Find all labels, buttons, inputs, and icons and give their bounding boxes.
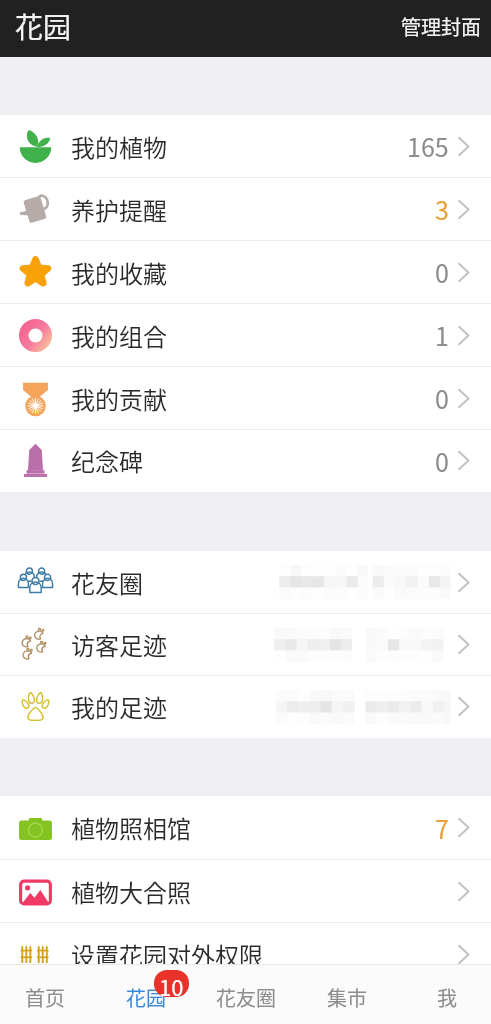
staticText: 养护提醒 [71,192,435,227]
button[interactable]: 我的收藏 [0,241,491,304]
staticText: 管理封面 [401,12,481,41]
button[interactable]: 纪念碑 [0,430,491,492]
staticText: 7 [435,810,449,846]
staticText: 1 [435,317,449,353]
button[interactable]: 花友圈 [197,965,295,1024]
staticText: 我的足迹 [71,689,274,724]
staticText: 我的植物 [71,129,407,164]
staticText: 我的收藏 [71,255,435,290]
staticText: 0 [435,443,449,479]
staticText: 0 [435,380,449,416]
button[interactable]: 集市 [295,965,393,1024]
button[interactable]: 首页 [0,965,99,1024]
staticText: 我 [437,983,457,1012]
staticText: 10 [159,970,184,997]
button[interactable]: 我 [393,965,491,1024]
staticText: 设置花园对外权限 [71,937,449,972]
button[interactable]: 管理封面 [385,5,491,53]
staticText: 集市 [327,983,367,1012]
staticText: 3 [435,191,449,227]
staticText: 0 [435,254,449,290]
staticText: 花友圈 [216,983,276,1012]
staticText: 我的贡献 [71,381,435,416]
staticText: 植物大合照 [71,874,449,909]
staticText: 植物照相馆 [71,810,435,845]
staticText: 访客足迹 [71,627,274,662]
button[interactable]: 花友圈 [0,551,491,614]
button[interactable]: 植物大合照 [0,860,491,923]
staticText: 165 [407,128,449,164]
button[interactable]: 我的组合 [0,304,491,367]
button[interactable]: 养护提醒 [0,178,491,241]
staticText: 首页 [25,983,65,1012]
staticText: 花园 [15,6,72,47]
staticText: 花园 [126,983,166,1012]
staticText: 纪念碑 [71,443,435,478]
button[interactable]: 设置花园对外权限 [0,923,491,986]
button[interactable]: 访客足迹 [0,614,491,676]
button[interactable]: 植物照相馆 [0,796,491,860]
button[interactable]: 我的植物 [0,115,491,178]
button[interactable]: 花园 [99,965,197,1024]
staticText: 我的组合 [71,318,435,353]
button[interactable]: 我的贡献 [0,367,491,430]
staticText: 花友圈 [71,565,274,600]
button[interactable]: 我的足迹 [0,676,491,738]
